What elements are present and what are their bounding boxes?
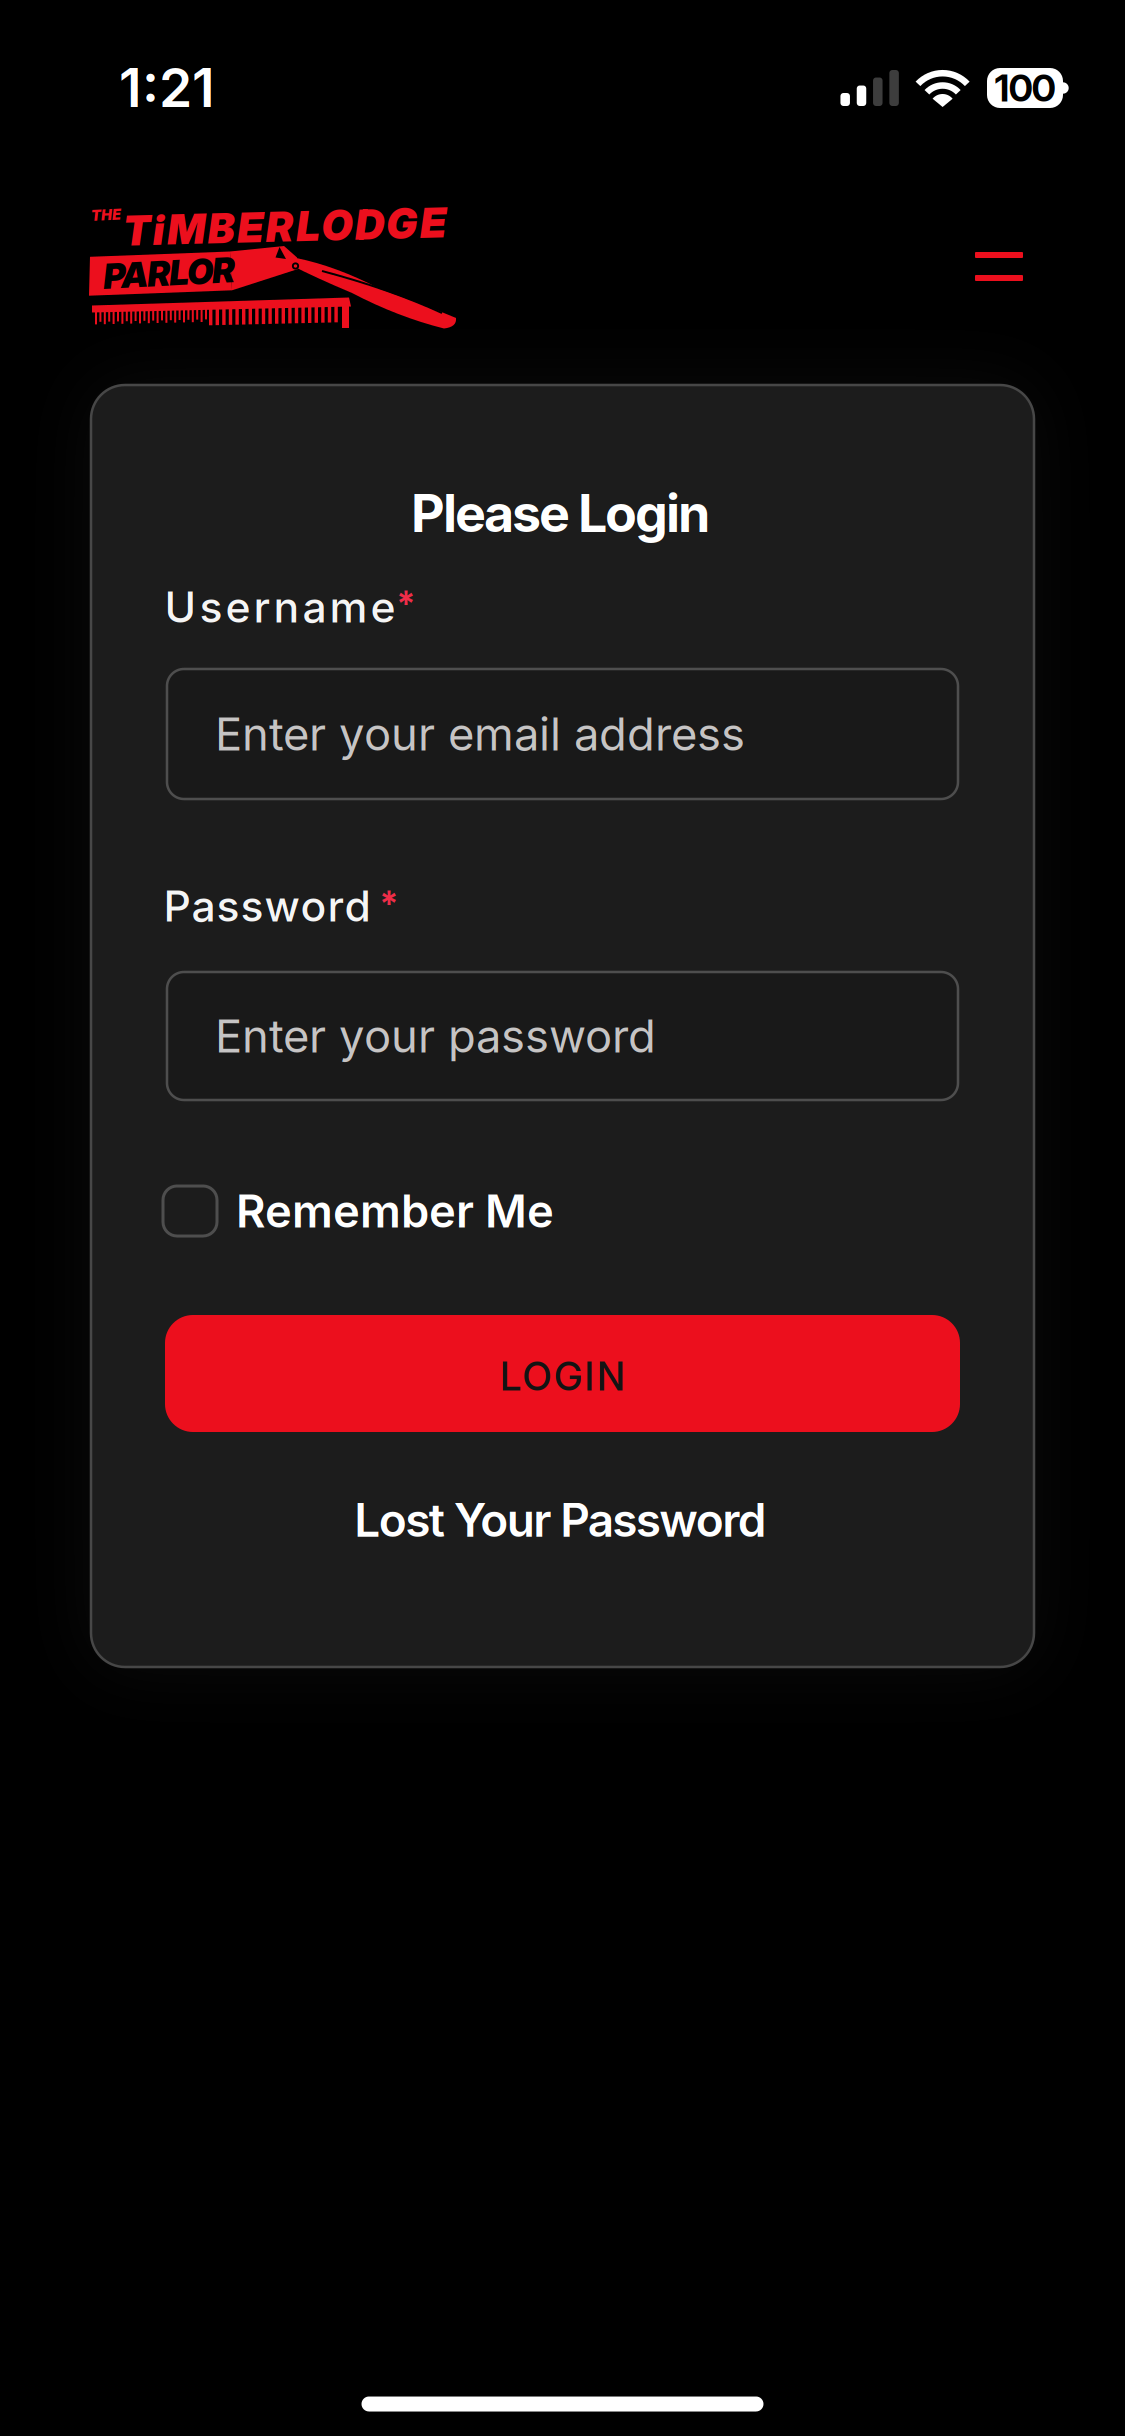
- staticText: Remember Me: [236, 1184, 554, 1238]
- staticText: *: [396, 583, 415, 625]
- button[interactable]: Password, Enter your password: [167, 972, 958, 1100]
- button[interactable]: Lost Your Password: [354, 1492, 767, 1548]
- button[interactable]: Username, Enter your email address: [167, 669, 958, 799]
- staticText: PARLOR: [103, 252, 235, 294]
- staticText: Enter your password: [215, 1009, 656, 1063]
- staticText: Please Login: [411, 481, 710, 544]
- staticText: Lost Your Password: [354, 1492, 767, 1548]
- staticText: Enter your email address: [215, 707, 745, 761]
- staticText: THE: [91, 206, 121, 224]
- staticText: TiMBERLODGE: [123, 201, 446, 251]
- staticText: *: [379, 883, 398, 925]
- staticText: Password: [163, 880, 370, 932]
- staticText: LOGIN: [500, 1353, 625, 1400]
- button[interactable]: Menu: [975, 252, 1023, 281]
- staticText: 100: [994, 65, 1055, 111]
- button[interactable]: Remember Me: [163, 1184, 554, 1238]
- staticText: 1:21: [119, 55, 215, 120]
- button[interactable]: LOGIN: [165, 1315, 960, 1432]
- staticText: Username: [164, 581, 395, 633]
